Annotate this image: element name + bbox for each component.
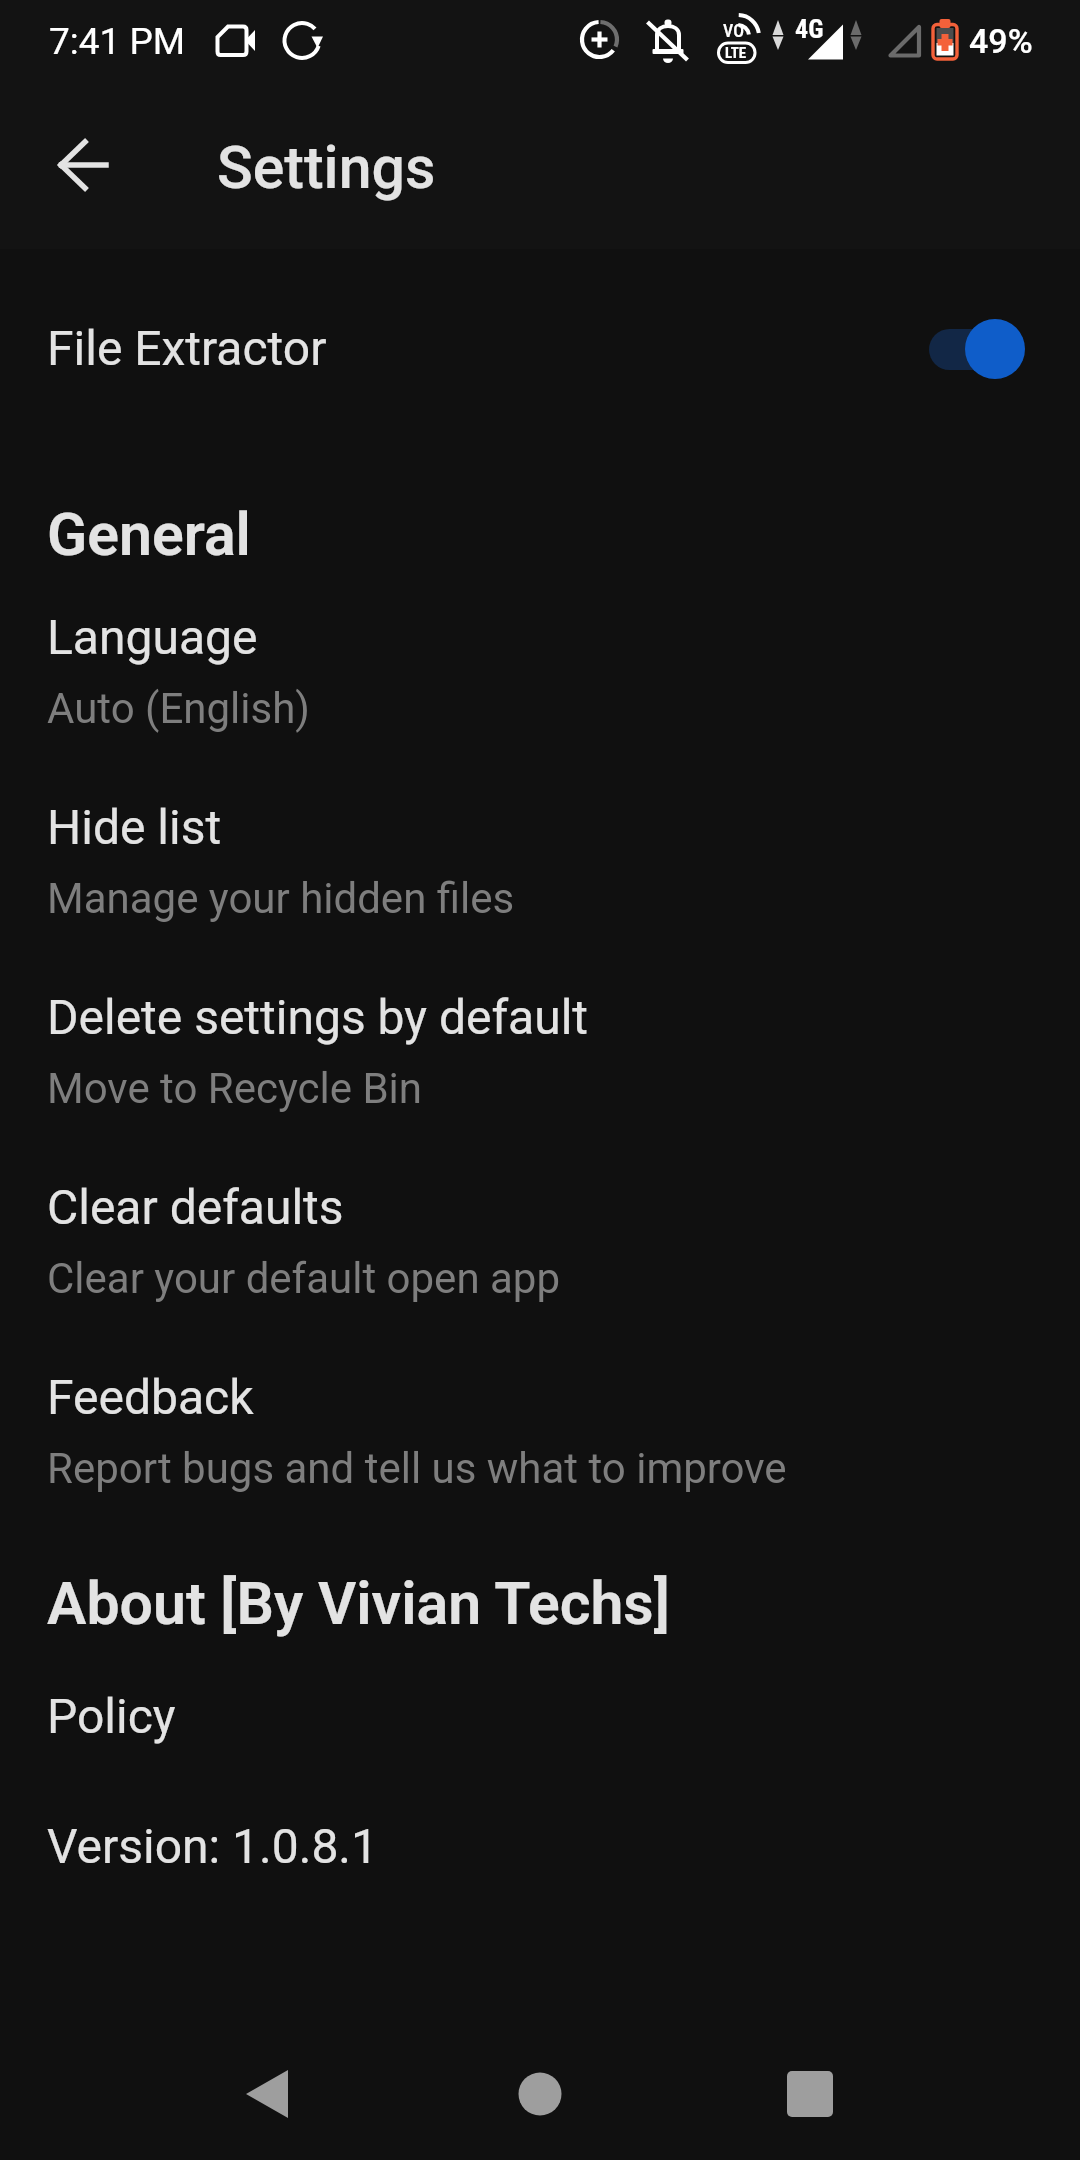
staticText: Policy (47, 1688, 176, 1744)
button[interactable]: Back (36, 117, 132, 213)
button[interactable]: Back (177, 2020, 357, 2160)
button[interactable]: Feedback (0, 1358, 1080, 1548)
staticText: Settings (217, 133, 436, 202)
staticText: LTE (725, 44, 747, 62)
button[interactable]: Language (0, 598, 1080, 788)
button[interactable]: Policy (0, 1670, 1080, 1754)
staticText: 49% (969, 21, 1033, 61)
staticText: 7:41 PM (49, 20, 186, 63)
staticText: Feedback (47, 1369, 254, 1425)
button[interactable]: Recent apps (720, 2020, 900, 2160)
staticText: Clear your default open app (47, 1254, 561, 1303)
staticText: VO (723, 20, 744, 41)
staticText: Manage your hidden files (47, 874, 515, 923)
button[interactable]: Home (450, 2020, 630, 2160)
button[interactable]: File Extractor (0, 289, 1080, 409)
staticText: Clear defaults (47, 1179, 344, 1235)
staticText: Version: 1.0.8.1 (47, 1818, 378, 1874)
button[interactable]: Hide list (0, 788, 1080, 978)
staticText: 4G (795, 14, 824, 44)
staticText: General (47, 500, 251, 569)
staticText: Report bugs and tell us what to improve (47, 1444, 787, 1493)
staticText: File Extractor (47, 320, 327, 376)
button[interactable]: Delete settings by default (0, 978, 1080, 1168)
staticText: Move to Recycle Bin (47, 1064, 422, 1113)
staticText: About [By Vivian Techs] (47, 1569, 670, 1638)
staticText: Delete settings by default (47, 989, 589, 1045)
button[interactable]: Clear defaults (0, 1168, 1080, 1358)
staticText: Auto (English) (47, 684, 310, 733)
staticText: Hide list (47, 799, 222, 855)
staticText: Language (47, 609, 258, 665)
